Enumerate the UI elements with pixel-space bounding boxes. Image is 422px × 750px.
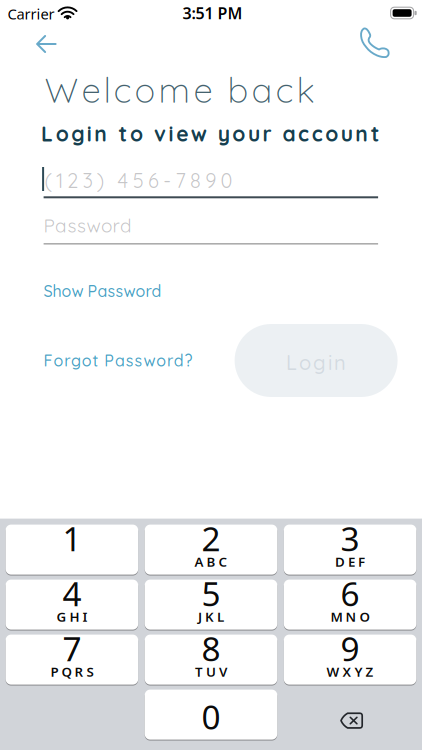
staticText: d — [174, 350, 184, 370]
staticText: t — [371, 120, 380, 147]
staticText: M N O — [331, 608, 370, 625]
staticText: 4 — [117, 168, 128, 193]
staticText: s — [77, 213, 86, 237]
staticText: g — [71, 120, 84, 147]
staticText: 5 — [201, 571, 220, 615]
staticText: 6 — [341, 571, 360, 615]
staticText: P — [44, 213, 55, 237]
staticText: o — [299, 350, 311, 375]
staticText: 5 — [133, 168, 144, 193]
staticText: e — [176, 120, 188, 147]
staticText: D E F — [335, 553, 365, 570]
staticText: P Q R S — [50, 663, 93, 680]
staticText: 1 — [56, 168, 63, 193]
button[interactable]: Call — [357, 27, 391, 59]
button[interactable]: Phone number — [0, 167, 422, 199]
staticText: e — [82, 68, 101, 111]
button[interactable]: 3 — [284, 525, 416, 575]
staticText: 0 — [220, 168, 232, 193]
staticText: n — [334, 350, 346, 375]
button[interactable]: Show Password — [44, 281, 162, 301]
staticText: g — [71, 350, 81, 370]
button[interactable]: Password — [0, 213, 422, 243]
staticText: y — [218, 120, 230, 147]
button[interactable]: 9 — [284, 635, 416, 685]
staticText: o — [82, 350, 92, 370]
staticText: 3 — [341, 516, 360, 560]
staticText: r — [64, 350, 70, 370]
staticText: c — [298, 120, 309, 147]
staticText: L — [286, 350, 297, 375]
staticText: Carrier — [8, 4, 55, 23]
button[interactable]: Login — [235, 324, 398, 397]
button[interactable]: 0 — [145, 690, 277, 740]
staticText: 8 — [190, 168, 201, 193]
staticText: ? — [185, 350, 193, 370]
staticText: a — [252, 68, 273, 111]
staticText: J K L — [198, 608, 224, 625]
staticText: s — [68, 213, 77, 237]
button[interactable]: Delete — [284, 690, 416, 740]
staticText: W X Y Z — [327, 663, 374, 680]
staticText: n — [355, 120, 368, 147]
staticText: 6 — [148, 168, 159, 193]
button[interactable]: 7 — [6, 635, 138, 685]
staticText: e — [194, 68, 213, 111]
staticText: r — [167, 350, 173, 370]
staticText: t — [118, 120, 127, 147]
staticText: a — [283, 120, 296, 147]
staticText: r — [262, 120, 271, 147]
button[interactable]: 4 — [6, 580, 138, 630]
staticText: o — [232, 120, 245, 147]
staticText: 3 — [82, 168, 92, 193]
staticText: 9 — [205, 168, 216, 193]
button[interactable]: Forgot Password? — [44, 350, 193, 370]
staticText: c — [276, 68, 294, 111]
button[interactable]: 2 — [145, 525, 277, 575]
staticText: 7 — [62, 626, 81, 670]
staticText: o — [56, 120, 69, 147]
staticText: 1 — [62, 516, 81, 560]
staticText: T U V — [195, 663, 227, 680]
staticText: 2 — [67, 168, 78, 193]
staticText: l — [104, 68, 111, 111]
staticText: r — [113, 213, 120, 237]
button[interactable]: 1 — [6, 525, 138, 575]
staticText: P — [104, 350, 114, 370]
staticText: o — [101, 213, 112, 237]
staticText: F — [44, 350, 53, 370]
staticText: m — [159, 68, 191, 111]
button[interactable]: 6 — [284, 580, 416, 630]
staticText: g — [313, 350, 326, 375]
staticText: 4 — [62, 571, 81, 615]
staticText: i — [87, 120, 92, 147]
staticText: Show Password — [44, 281, 162, 301]
staticText: i — [169, 120, 174, 147]
staticText: A B C — [194, 553, 227, 570]
staticText: o — [53, 350, 63, 370]
staticText: t — [93, 350, 99, 370]
button[interactable]: 5 — [145, 580, 277, 630]
staticText: c — [114, 68, 132, 111]
staticText: o — [325, 120, 338, 147]
staticText: a — [115, 350, 125, 370]
staticText: - — [163, 168, 171, 193]
staticText: w — [143, 350, 155, 370]
staticText: b — [228, 68, 249, 111]
button[interactable]: 8 — [145, 635, 277, 685]
staticText: a — [55, 213, 67, 237]
staticText: k — [297, 68, 315, 111]
staticText: w — [87, 213, 101, 237]
button[interactable]: Back — [34, 35, 59, 53]
staticText: d — [120, 213, 132, 237]
staticText: 3:51 PM — [183, 2, 243, 24]
staticText: W — [45, 68, 79, 111]
staticText: 2 — [201, 516, 220, 560]
staticText: v — [154, 120, 166, 147]
staticText: u — [248, 120, 260, 147]
